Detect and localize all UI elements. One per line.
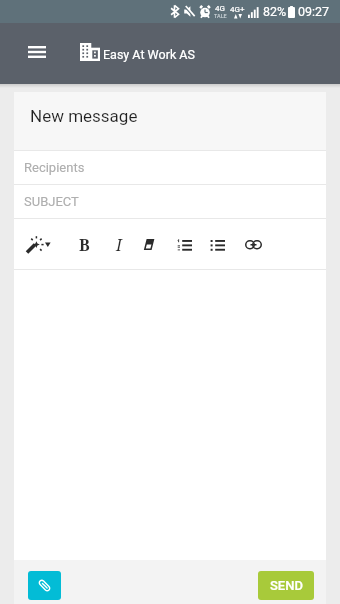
button[interactable]: Numbered list	[168, 228, 201, 261]
button[interactable]: Bulleted list	[201, 228, 234, 261]
button[interactable]: SEND	[258, 571, 314, 600]
staticText: I	[116, 234, 122, 256]
staticText: Recipients	[24, 160, 85, 175]
button[interactable]: Italic	[102, 228, 135, 261]
button[interactable]: Formatting options	[21, 228, 54, 261]
button[interactable]: Clear formatting	[132, 228, 165, 261]
staticText: 4G	[215, 4, 225, 13]
staticText: TALE	[214, 13, 227, 19]
button[interactable]: SUBJECT	[24, 185, 326, 218]
staticText: 4G+	[230, 5, 245, 14]
button[interactable]: Recipients	[24, 151, 326, 184]
staticText: SUBJECT	[24, 194, 79, 209]
staticText: 09:27	[298, 4, 330, 19]
staticText: Easy At Work AS	[103, 47, 195, 62]
staticText: New message	[30, 106, 138, 126]
button[interactable]: Insert link	[237, 228, 270, 261]
staticText: B	[79, 234, 90, 256]
staticText: 82%	[263, 4, 287, 19]
button[interactable]: Attach file	[28, 571, 61, 600]
button[interactable]: Bold	[68, 228, 101, 261]
button[interactable]: Open navigation menu	[18, 33, 56, 71]
staticText: SEND	[270, 578, 303, 593]
